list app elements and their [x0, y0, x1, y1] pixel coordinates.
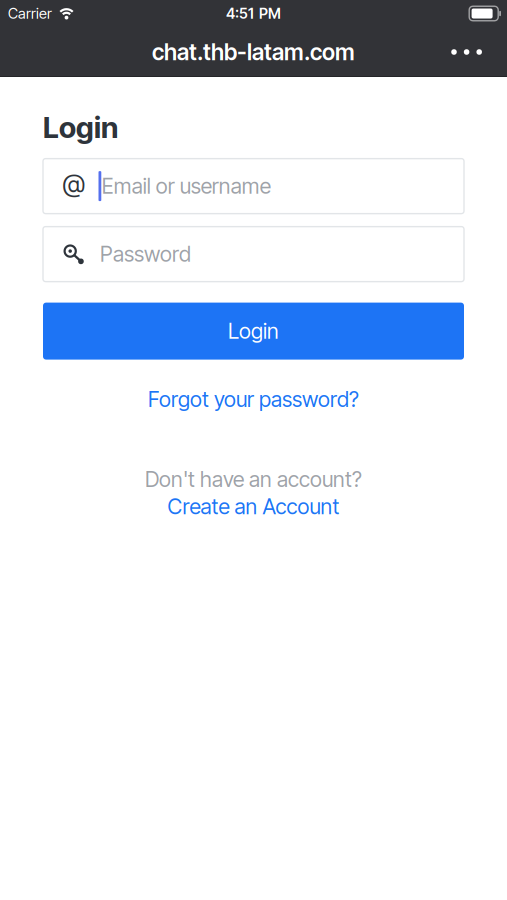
- staticText: @: [62, 168, 85, 198]
- staticText: Carrier: [8, 5, 52, 22]
- button[interactable]: Forgot your password?: [148, 387, 359, 412]
- staticText: Email or username: [102, 173, 271, 199]
- staticText: Login: [228, 318, 279, 344]
- staticText: Create an Account: [167, 494, 339, 519]
- button[interactable]: Login: [43, 303, 464, 360]
- button[interactable]: Password: [43, 227, 464, 282]
- staticText: Password: [100, 241, 191, 267]
- button[interactable]: Create an Account: [167, 494, 339, 519]
- staticText: Login: [43, 110, 118, 145]
- staticText: 4:51 PM: [226, 5, 281, 22]
- staticText: Forgot your password?: [148, 387, 359, 412]
- staticText: Don't have an account?: [145, 467, 362, 492]
- button[interactable]: More options: [439, 39, 494, 65]
- staticText: chat.thb-latam.com: [152, 39, 355, 65]
- button[interactable]: @: [43, 159, 464, 214]
